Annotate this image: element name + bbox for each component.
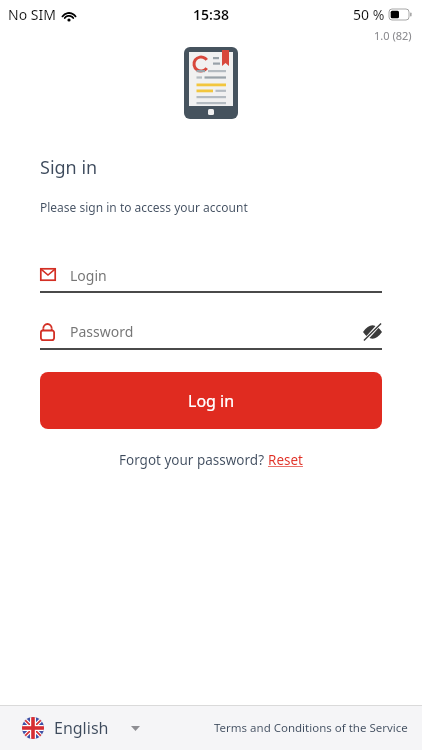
staticText: Sign in xyxy=(40,155,98,180)
button[interactable]: Reset xyxy=(268,451,303,469)
button[interactable]: Terms and Conditions of the Service xyxy=(214,720,422,736)
staticText: Login xyxy=(70,266,107,285)
staticText: No SIM xyxy=(8,5,56,24)
button[interactable]: Log in xyxy=(40,372,382,429)
staticText: Please sign in to access your account xyxy=(40,199,248,215)
staticText: Log in xyxy=(188,390,235,412)
button[interactable]: Login xyxy=(40,266,382,293)
staticText: English xyxy=(54,717,109,739)
staticText: 1.0 (82) xyxy=(374,28,412,43)
staticText: 15:38 xyxy=(193,5,229,24)
staticText: Forgot your password? xyxy=(119,451,268,469)
staticText: 50 % xyxy=(353,5,385,24)
button[interactable]: Password xyxy=(40,322,382,350)
staticText: Password xyxy=(70,322,134,341)
button[interactable]: English xyxy=(0,717,140,739)
